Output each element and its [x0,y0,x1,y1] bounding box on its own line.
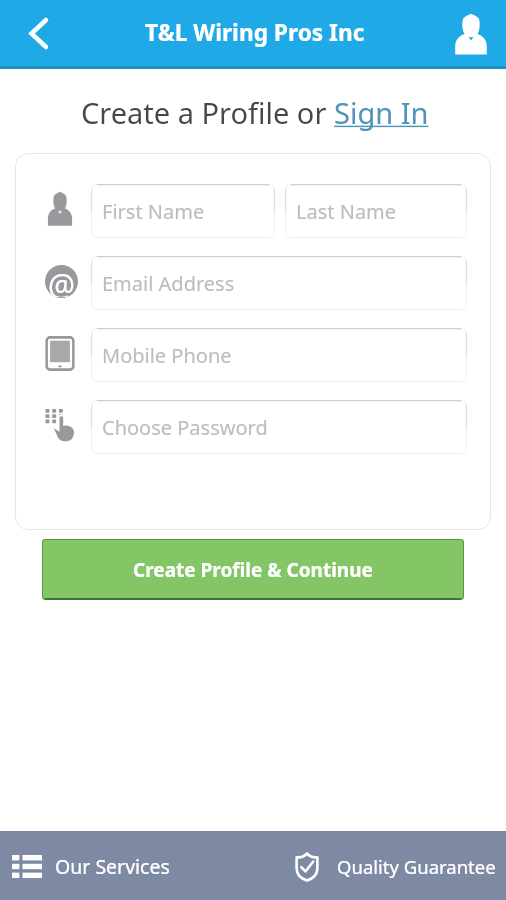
staticText: Quality Guarantee [337,854,496,879]
staticText: First Name [102,198,205,225]
staticText: Last Name [296,198,397,225]
button[interactable]: Our Services [0,832,240,900]
staticText: T&L Wiring Pros Inc [145,17,365,48]
staticText: Email Address [102,270,235,297]
staticText: Our Services [55,853,170,880]
staticText: Create a Profile or [81,93,334,132]
button[interactable]: Sign In [334,93,429,132]
button[interactable]: Back [0,0,66,66]
button[interactable]: Account [440,0,506,66]
staticText: Create Profile & Continue [133,557,373,583]
staticText: Mobile Phone [102,342,232,369]
button[interactable]: Mobile Phone [91,328,467,382]
button[interactable]: Email Address [91,256,467,310]
button[interactable]: Last Name [285,184,467,238]
button[interactable]: Quality Guarantee [286,832,506,900]
staticText: @ [48,265,75,297]
button[interactable]: Create Profile & Continue [42,539,464,600]
button[interactable]: First Name [91,184,275,238]
button[interactable]: Choose Password [91,400,467,454]
staticText: Choose Password [102,414,268,441]
